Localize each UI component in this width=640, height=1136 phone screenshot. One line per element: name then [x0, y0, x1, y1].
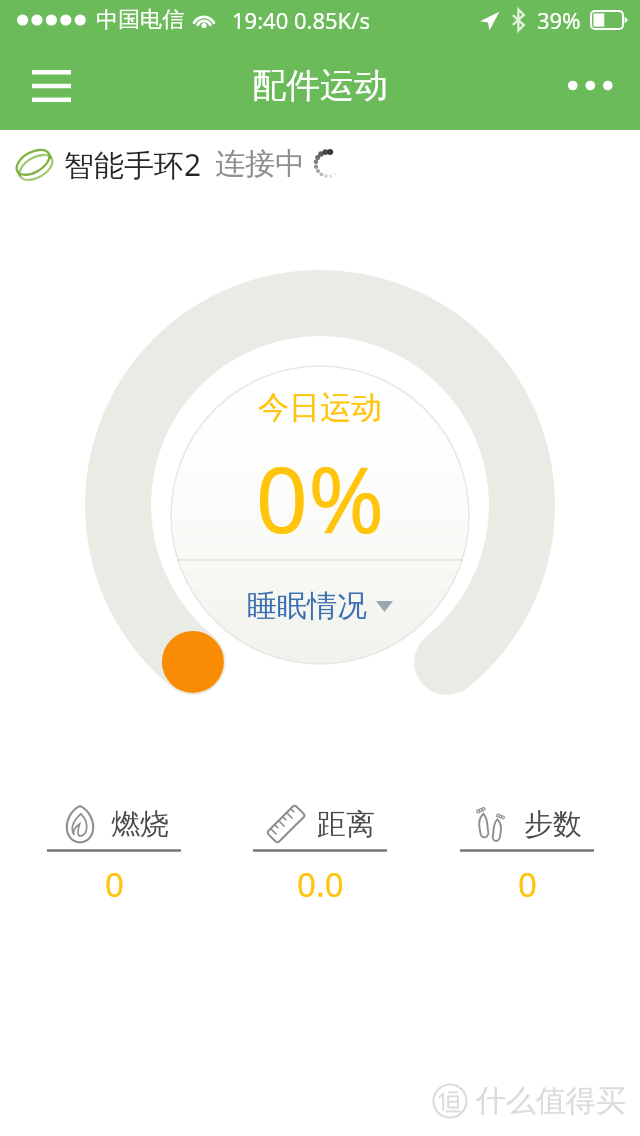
- button[interactable]: 步数: [434, 800, 620, 910]
- staticText: 配件运动: [252, 64, 388, 107]
- staticText: 19:40 0.85K/s: [232, 5, 370, 35]
- button[interactable]: More options: [558, 57, 624, 113]
- staticText: 0%: [255, 435, 385, 560]
- button[interactable]: Menu: [20, 57, 82, 113]
- staticText: 距离: [317, 806, 375, 843]
- staticText: 0.0: [297, 862, 344, 907]
- staticText: 0: [105, 862, 124, 907]
- staticText: 连接中: [215, 145, 305, 183]
- staticText: 今日运动: [258, 388, 382, 427]
- staticText: 39%: [537, 5, 581, 35]
- button[interactable]: 距离: [227, 800, 413, 910]
- button[interactable]: 智能手环2: [0, 130, 640, 198]
- staticText: 什么值得买: [476, 1082, 626, 1120]
- staticText: 步数: [524, 806, 582, 843]
- staticText: 智能手环2: [64, 144, 202, 185]
- staticText: 中国电信: [96, 6, 184, 34]
- staticText: 睡眠情况: [247, 587, 367, 625]
- staticText: 0: [518, 862, 537, 907]
- button[interactable]: 燃烧: [21, 800, 207, 910]
- button[interactable]: 睡眠情况: [237, 580, 403, 632]
- staticText: 燃烧: [111, 806, 169, 843]
